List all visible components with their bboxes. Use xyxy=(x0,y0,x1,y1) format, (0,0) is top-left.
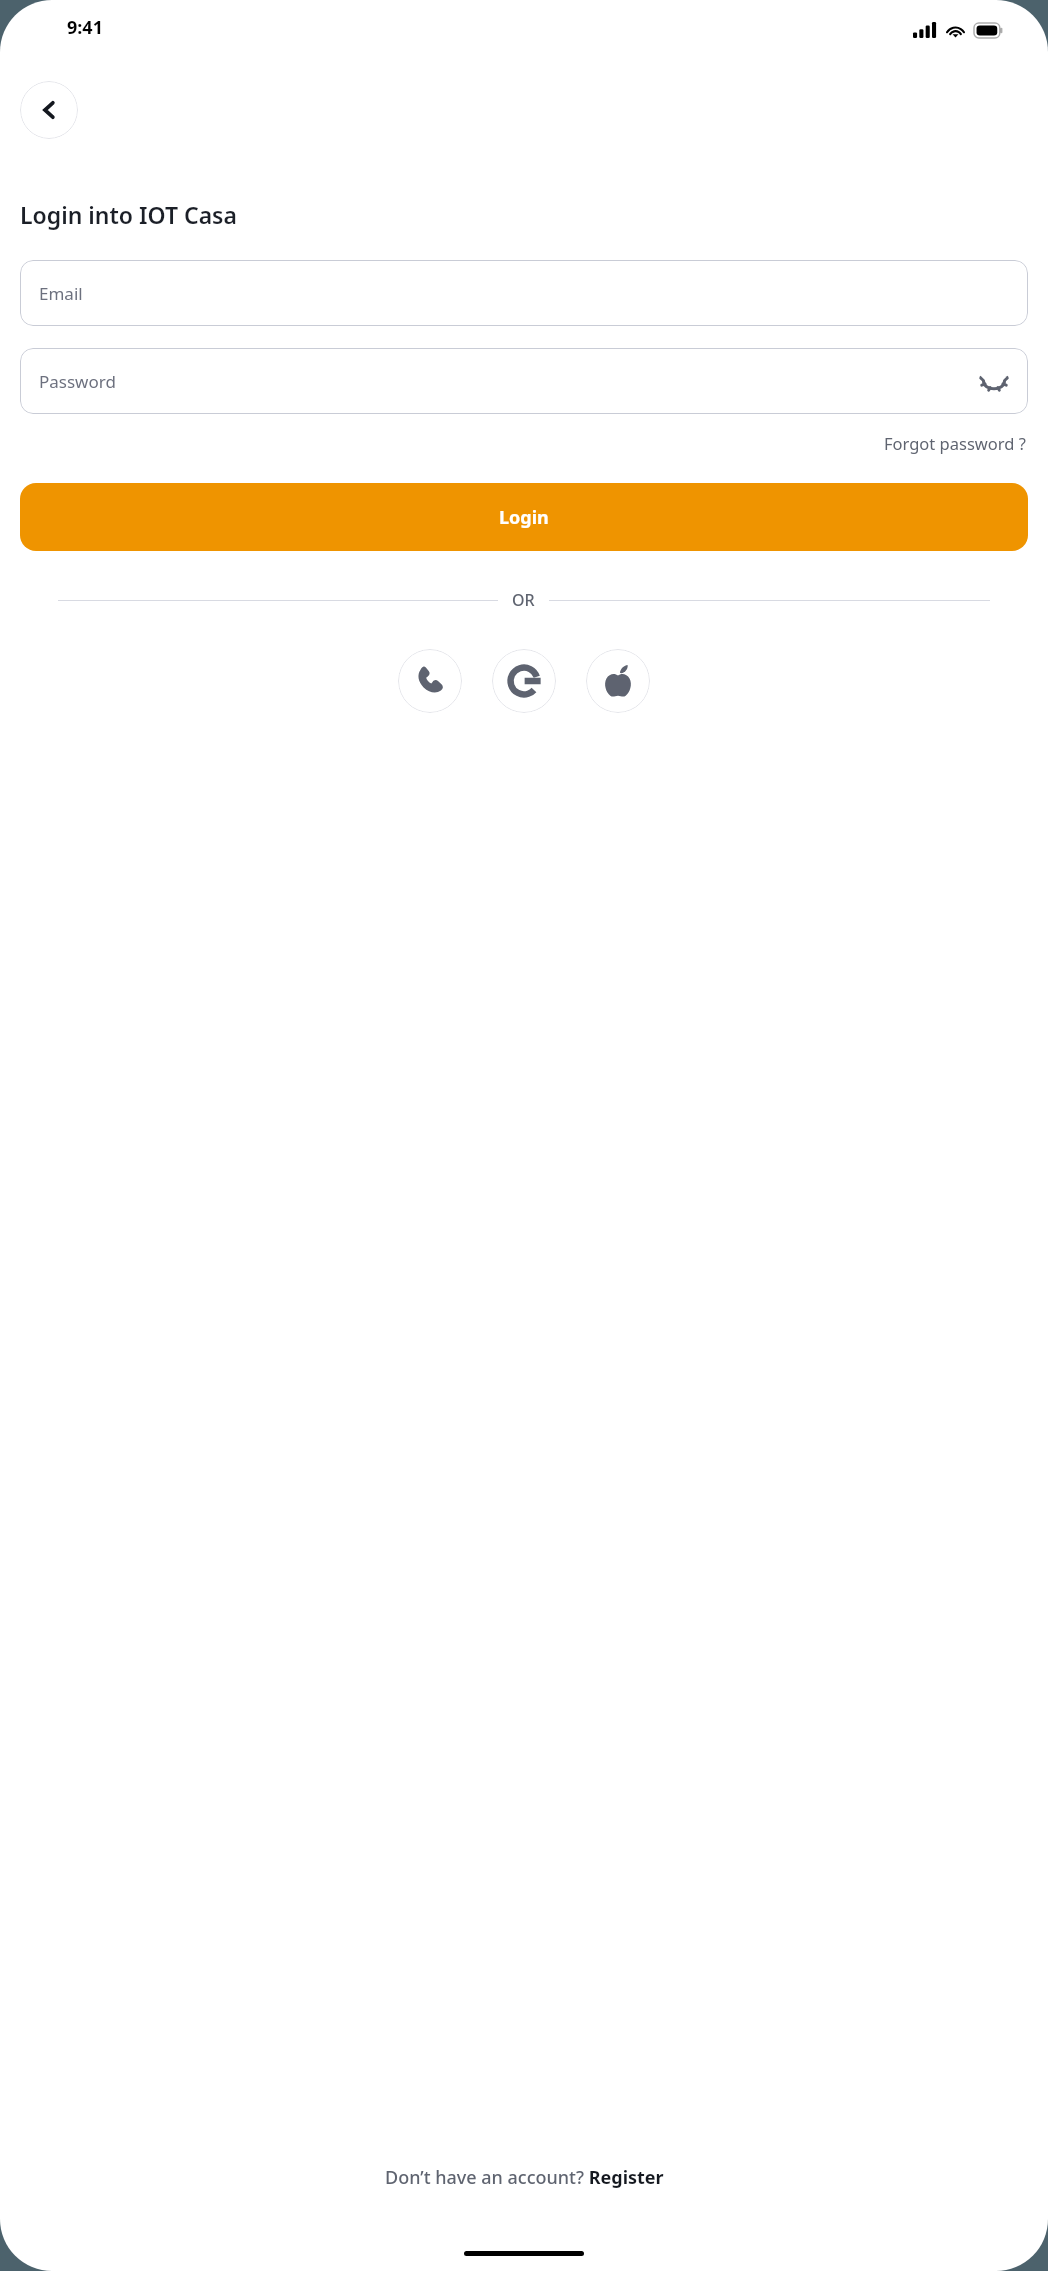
button[interactable]: Forgot password ? xyxy=(882,430,1028,456)
staticText: 9:41 xyxy=(67,15,103,40)
button[interactable]: Show password xyxy=(979,366,1009,396)
button[interactable]: Login xyxy=(20,483,1028,551)
staticText: Email xyxy=(39,282,1009,305)
button[interactable]: Sign in with Apple xyxy=(586,649,650,713)
staticText: Password xyxy=(39,370,979,393)
staticText: Login xyxy=(499,505,549,530)
button[interactable]: Don’t have an account? Register xyxy=(381,2162,668,2193)
button[interactable]: Back xyxy=(20,81,78,139)
staticText: Login into IOT Casa xyxy=(20,199,237,230)
staticText: Forgot password ? xyxy=(884,432,1026,454)
button[interactable]: Email xyxy=(20,260,1028,326)
button[interactable]: Sign in with Google xyxy=(492,649,556,713)
staticText: Don’t have an account? Register xyxy=(385,2165,664,2190)
button[interactable]: Password xyxy=(20,348,1028,414)
staticText: OR xyxy=(512,589,535,611)
button[interactable]: Sign in with phone xyxy=(398,649,462,713)
